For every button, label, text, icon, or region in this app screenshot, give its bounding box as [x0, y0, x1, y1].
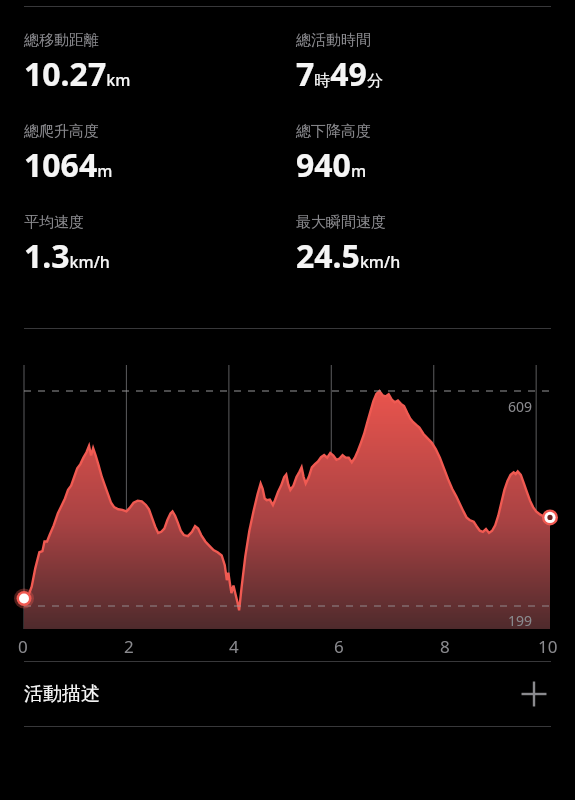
staticText: 1064m [24, 143, 113, 187]
staticText: 總移動距離 [24, 31, 99, 50]
staticText: 7時49分 [296, 52, 383, 96]
staticText: 10 [538, 635, 558, 658]
staticText: 2 [124, 635, 134, 658]
staticText: 平均速度 [24, 213, 84, 232]
staticText: 0 [18, 635, 28, 658]
other: 新增活動描述 [517, 677, 551, 711]
staticText: 24.5km/h [296, 234, 401, 278]
staticText: 總下降高度 [296, 122, 371, 141]
staticText: 最大瞬間速度 [296, 213, 386, 232]
staticText: 940m [296, 143, 367, 187]
button[interactable]: 活動描述 [0, 662, 575, 726]
staticText: 199 [508, 611, 533, 630]
staticText: 活動描述 [24, 682, 100, 706]
staticText: 10.27km [24, 52, 131, 96]
staticText: 總爬升高度 [24, 122, 99, 141]
staticText: 4 [229, 635, 239, 658]
staticText: 總活動時間 [296, 31, 371, 50]
staticText: 1.3km/h [24, 234, 110, 278]
staticText: 8 [440, 635, 450, 658]
staticText: 609 [508, 397, 533, 416]
staticText: 6 [334, 635, 344, 658]
